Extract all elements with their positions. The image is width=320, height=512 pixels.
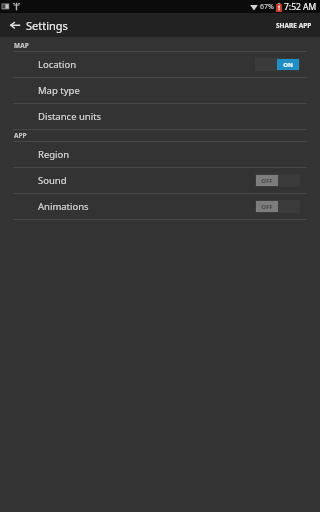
button[interactable]: Back — [0, 13, 30, 37]
staticText: Sound — [38, 174, 67, 187]
staticText: ON — [283, 61, 293, 69]
button[interactable]: SHARE APP — [268, 13, 320, 37]
staticText: Map type — [38, 84, 80, 97]
button[interactable]: Distance units — [0, 104, 320, 130]
button[interactable]: Region — [0, 142, 320, 168]
button[interactable]: Switch off — [255, 200, 300, 213]
staticText: Settings — [26, 18, 68, 33]
staticText: Location — [38, 58, 77, 71]
button[interactable]: Map type — [0, 78, 320, 104]
staticText: APP — [14, 131, 27, 140]
staticText: Animations — [38, 200, 89, 213]
button[interactable]: Switch on — [255, 58, 300, 71]
button[interactable]: Location — [0, 52, 320, 78]
staticText: Distance units — [38, 110, 102, 123]
staticText: MAP — [14, 41, 29, 50]
button[interactable]: Animations — [0, 194, 320, 220]
staticText: Region — [38, 148, 70, 161]
button[interactable]: Sound — [0, 168, 320, 194]
staticText: 67% — [260, 2, 274, 12]
staticText: 7:52 AM — [284, 1, 317, 13]
staticText: OFF — [261, 203, 273, 211]
staticText: SHARE APP — [276, 21, 312, 30]
staticText: OFF — [261, 177, 273, 185]
button[interactable]: Switch off — [255, 174, 300, 187]
